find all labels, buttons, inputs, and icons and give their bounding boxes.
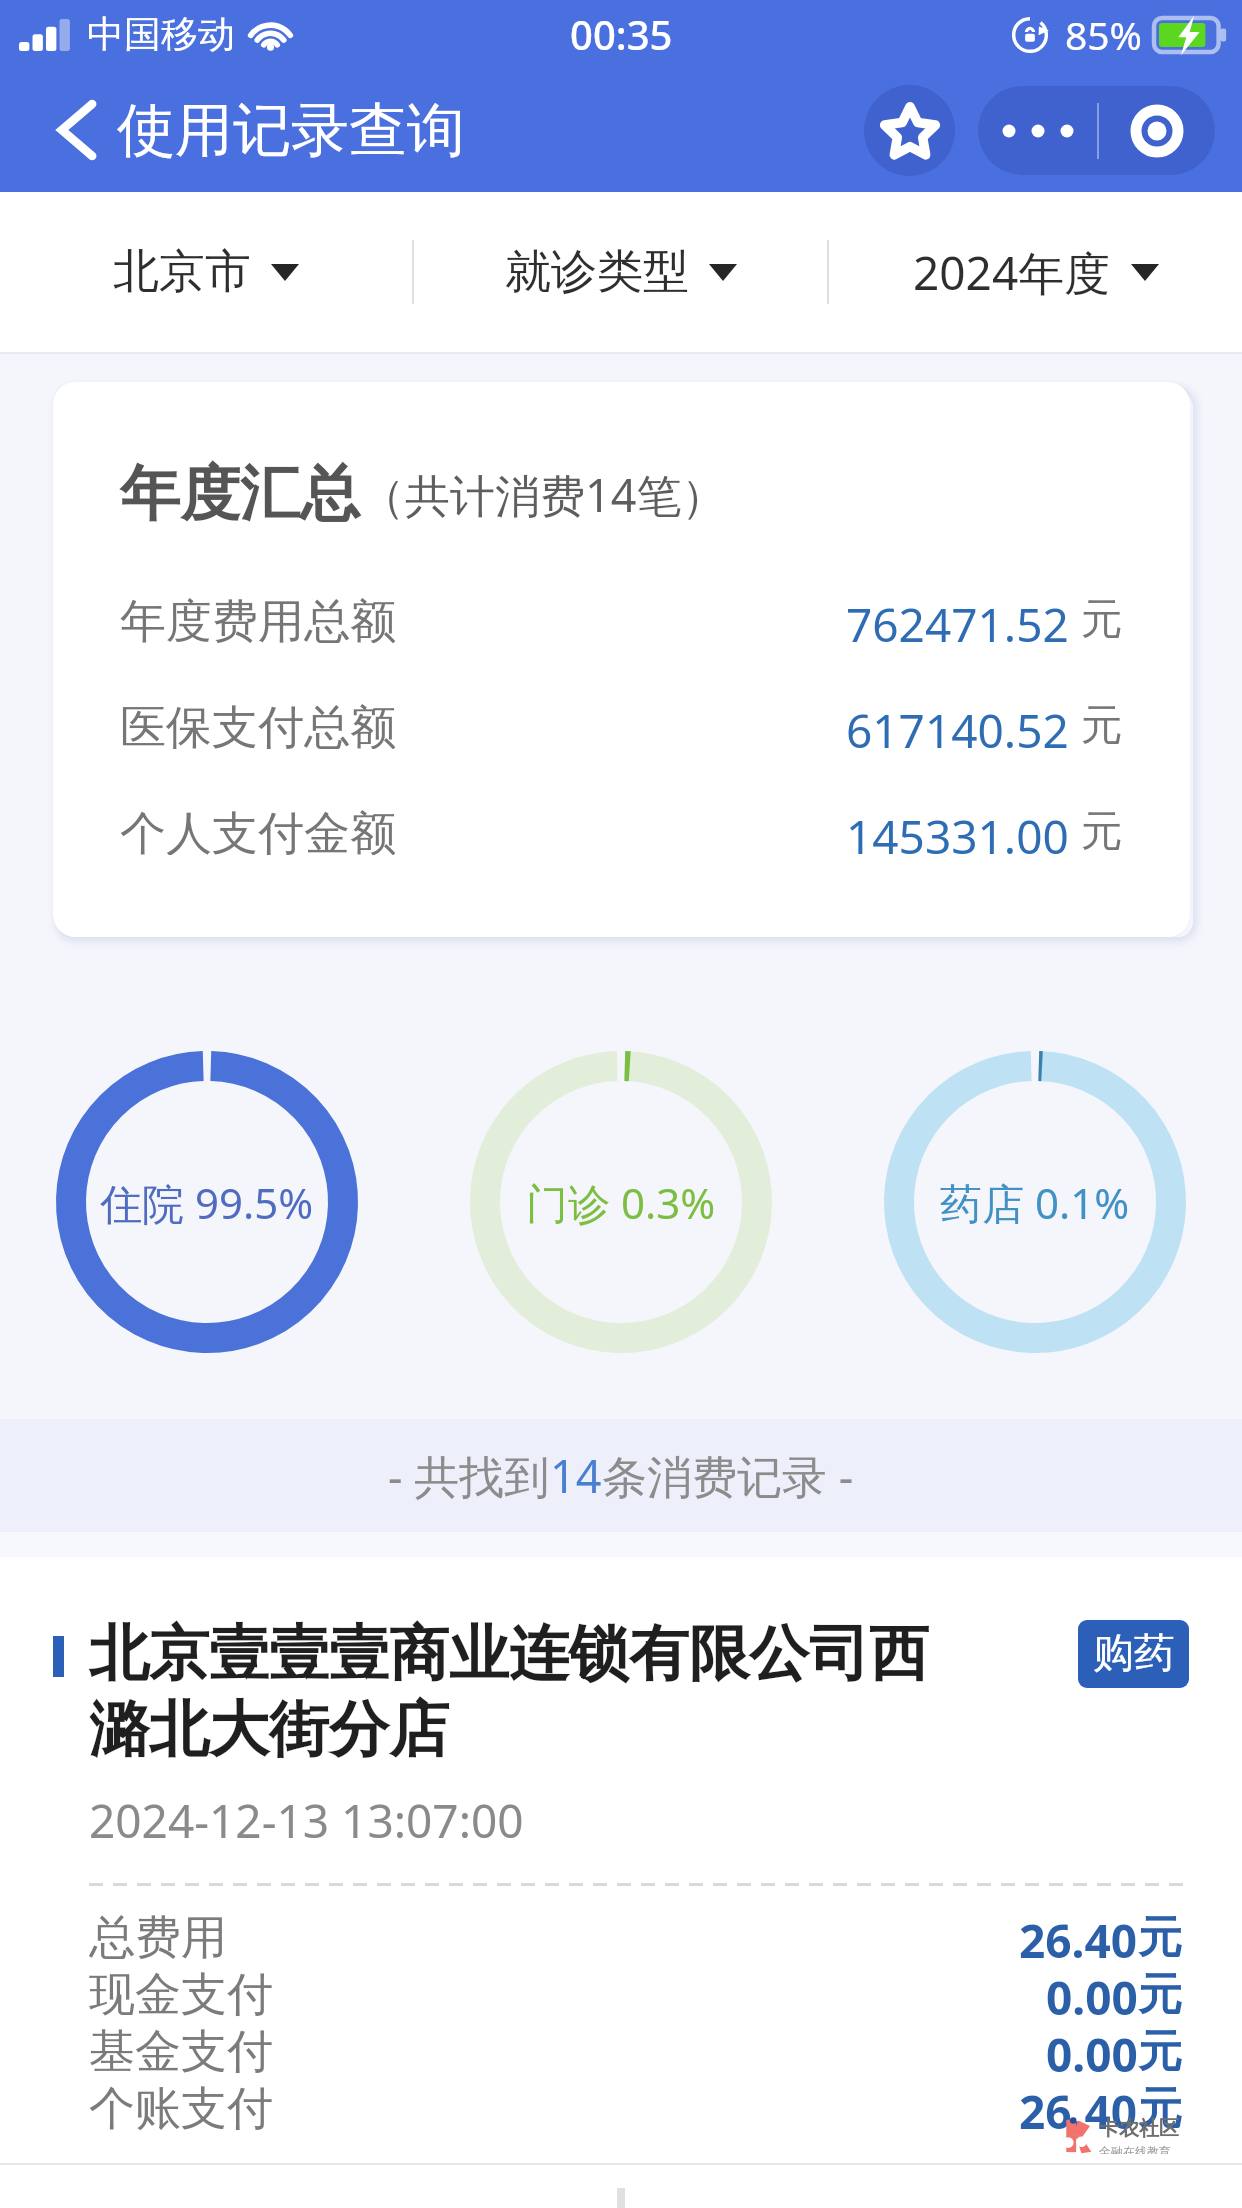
staticText: 门诊 0.3% <box>526 1174 716 1231</box>
staticText: 现金支付 <box>89 1966 273 2023</box>
staticText: 762471.52 <box>846 593 1069 643</box>
staticText: 总费用 <box>89 1909 227 1966</box>
staticText: 617140.52 <box>846 699 1069 749</box>
staticText: 年度费用总额 <box>120 593 396 643</box>
staticText: 00:35 <box>570 7 673 61</box>
button[interactable]: 就诊类型 <box>414 192 827 352</box>
staticText: 26.40 <box>1019 1909 1138 1966</box>
staticText: 元 <box>1081 805 1123 855</box>
staticText: 北京壹壹壹商业连锁有限公司西潞北大街分店 <box>89 1616 959 1768</box>
staticText: 中国移动 <box>87 11 235 58</box>
staticText: 北京市 <box>113 243 251 301</box>
staticText: 条消费记录 - <box>602 1445 854 1506</box>
staticText: 2024年度 <box>913 241 1111 304</box>
button[interactable]: 2024年度 <box>829 192 1242 352</box>
staticText: 元 <box>1138 2081 1182 2136</box>
staticText: 个账支付 <box>89 2080 273 2137</box>
staticText: 卡农社区 <box>1099 2116 1179 2141</box>
button[interactable]: 北京壹壹壹商业连锁有限公司西潞北大街分店 <box>0 1557 1242 2208</box>
button[interactable]: 购药 <box>1078 1620 1189 1688</box>
staticText: 金融在线教育 <box>1099 2144 1171 2154</box>
staticText: 医保支付总额 <box>120 699 396 749</box>
staticText: 14 <box>550 1445 602 1506</box>
staticText: 使用记录查询 <box>117 94 465 167</box>
staticText: 元 <box>1138 1967 1182 2022</box>
staticText: 元 <box>1138 1910 1182 1965</box>
staticText: 基金支付 <box>89 2023 273 2080</box>
staticText: 0.00 <box>1046 2023 1138 2080</box>
staticText: 26.40 <box>1019 2080 1138 2137</box>
staticText: - 共找到 <box>388 1445 550 1506</box>
staticText: 就诊类型 <box>505 243 689 301</box>
staticText: 元 <box>1081 593 1123 643</box>
staticText: 2024-12-13 13:07:00 <box>89 1789 524 1852</box>
staticText: 元 <box>1081 699 1123 749</box>
button[interactable]: Back <box>57 99 97 161</box>
staticText: （共计消费14笔） <box>360 464 727 525</box>
button[interactable]: More <box>978 86 1097 175</box>
staticText: 85% <box>1065 8 1143 61</box>
staticText: 购药 <box>1093 1628 1175 1680</box>
staticText: 145331.00 <box>846 805 1069 855</box>
staticText: 元 <box>1138 2024 1182 2079</box>
staticText: 住院 99.5% <box>100 1174 314 1231</box>
button[interactable]: Favorite <box>864 85 955 176</box>
button[interactable]: 北京市 <box>0 192 412 352</box>
staticText: 年度汇总 <box>120 456 360 532</box>
button[interactable]: Close <box>1099 86 1215 175</box>
staticText: 药店 0.1% <box>940 1174 1130 1231</box>
staticText: 个人支付金额 <box>120 805 396 855</box>
staticText: 0.00 <box>1046 1966 1138 2023</box>
